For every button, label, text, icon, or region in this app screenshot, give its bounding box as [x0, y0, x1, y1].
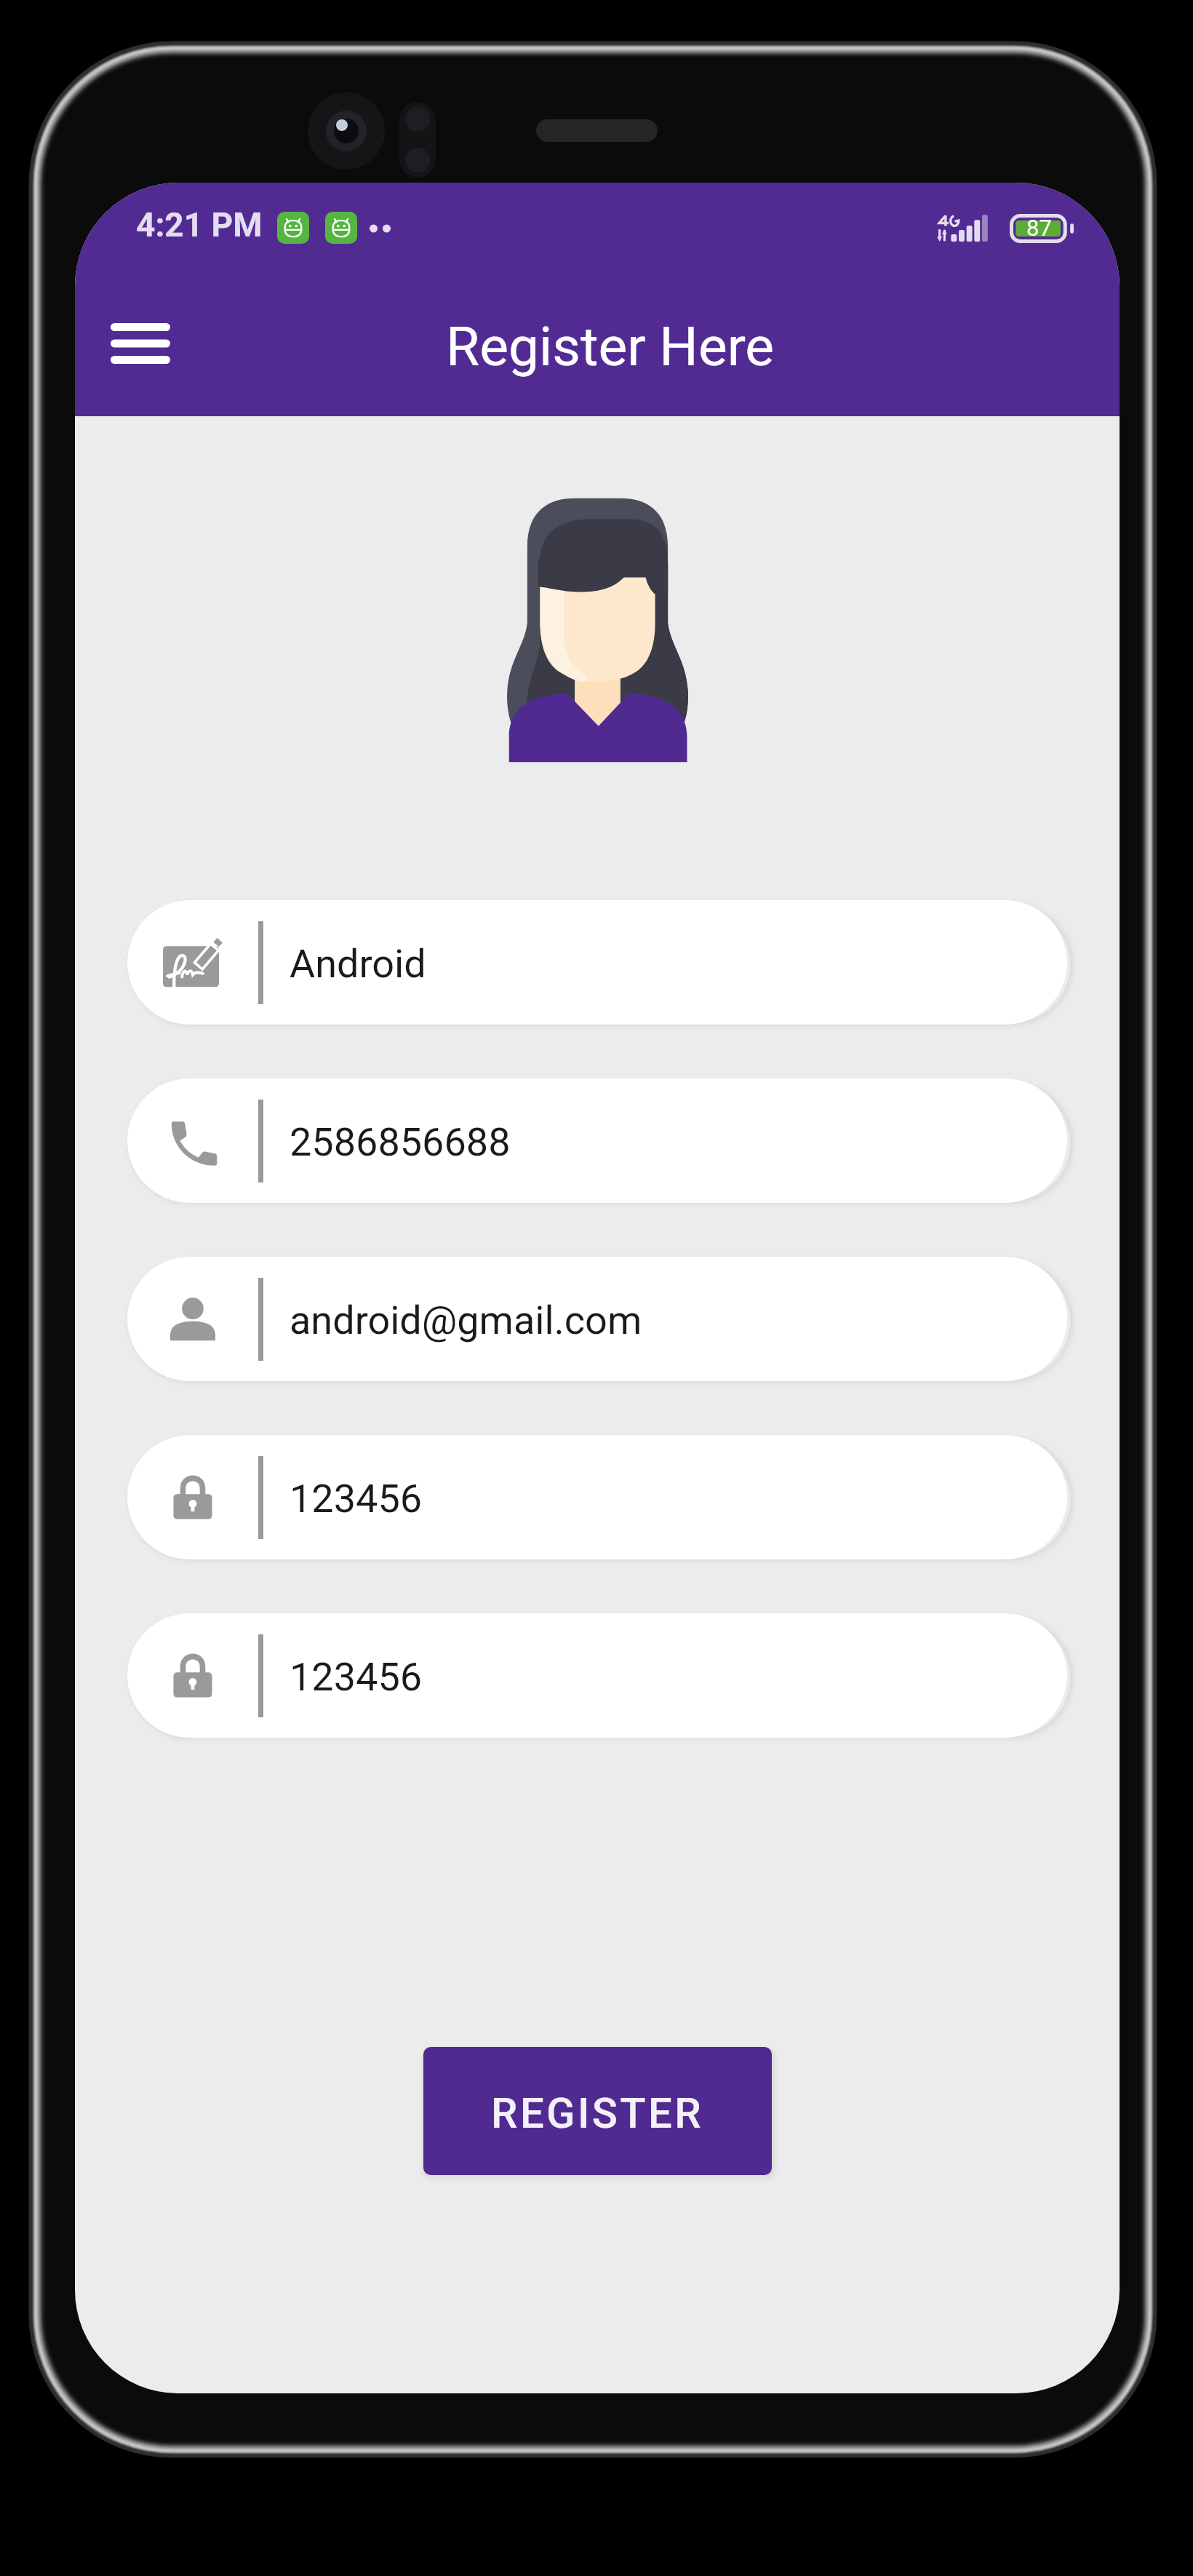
button[interactable]: 123456 [127, 1435, 1067, 1559]
button[interactable]: 123456 [127, 1613, 1067, 1738]
staticText: android@gmail.com [290, 1297, 642, 1343]
staticText: Android [290, 941, 426, 987]
staticText: 4:21 PM [136, 205, 263, 245]
button[interactable]: Open navigation menu [93, 296, 188, 391]
staticText: 2586856688 [290, 1119, 511, 1165]
button[interactable]: REGISTER [423, 2047, 772, 2175]
button[interactable]: Android [127, 900, 1067, 1025]
staticText: 123456 [290, 1476, 423, 1522]
staticText: 87 [1026, 215, 1052, 241]
button[interactable]: android@gmail.com [127, 1257, 1067, 1381]
staticText: Register Here [446, 314, 775, 378]
staticText: 123456 [290, 1654, 423, 1700]
button[interactable]: 2586856688 [127, 1078, 1067, 1203]
staticText: REGISTER [491, 2088, 704, 2138]
